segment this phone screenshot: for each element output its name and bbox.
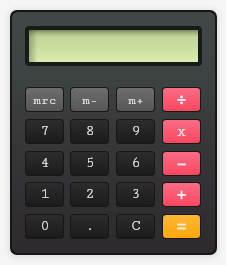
button[interactable]: Minus — [163, 152, 200, 175]
button[interactable]: 6 — [117, 152, 154, 175]
button[interactable]: C — [117, 215, 154, 238]
button[interactable]: 7 — [26, 120, 63, 143]
staticText: . — [85, 218, 95, 235]
staticText: 5 — [85, 155, 95, 172]
staticText: C — [131, 218, 141, 235]
button[interactable]: m+ — [117, 88, 154, 111]
button[interactable]: 2 — [71, 183, 108, 206]
button[interactable]: 0 — [26, 215, 63, 238]
staticText: 7 — [40, 123, 50, 140]
button[interactable]: 5 — [71, 152, 108, 175]
button[interactable]: 8 — [71, 120, 108, 143]
staticText: 4 — [40, 155, 50, 172]
button[interactable]: m− — [71, 88, 108, 111]
staticText: 0 — [40, 218, 50, 235]
button[interactable]: 4 — [26, 152, 63, 175]
staticText: m− — [82, 93, 98, 107]
staticText: 1 — [40, 186, 50, 203]
staticText: x — [176, 122, 187, 141]
button[interactable]: Divide — [163, 88, 200, 111]
button[interactable]: . — [71, 215, 108, 238]
staticText: m+ — [128, 93, 144, 107]
staticText: 2 — [85, 186, 95, 203]
button[interactable]: 3 — [117, 183, 154, 206]
button[interactable]: mrc — [26, 88, 63, 111]
button[interactable]: Equals — [163, 215, 200, 238]
staticText: 8 — [85, 123, 95, 140]
button[interactable]: 1 — [26, 183, 63, 206]
button[interactable]: x — [163, 120, 200, 143]
staticText: mrc — [33, 93, 57, 107]
button[interactable]: Plus — [163, 183, 200, 206]
staticText: 9 — [131, 123, 141, 140]
button[interactable]: 9 — [117, 120, 154, 143]
staticText: 6 — [131, 155, 141, 172]
staticText: 3 — [131, 186, 141, 203]
